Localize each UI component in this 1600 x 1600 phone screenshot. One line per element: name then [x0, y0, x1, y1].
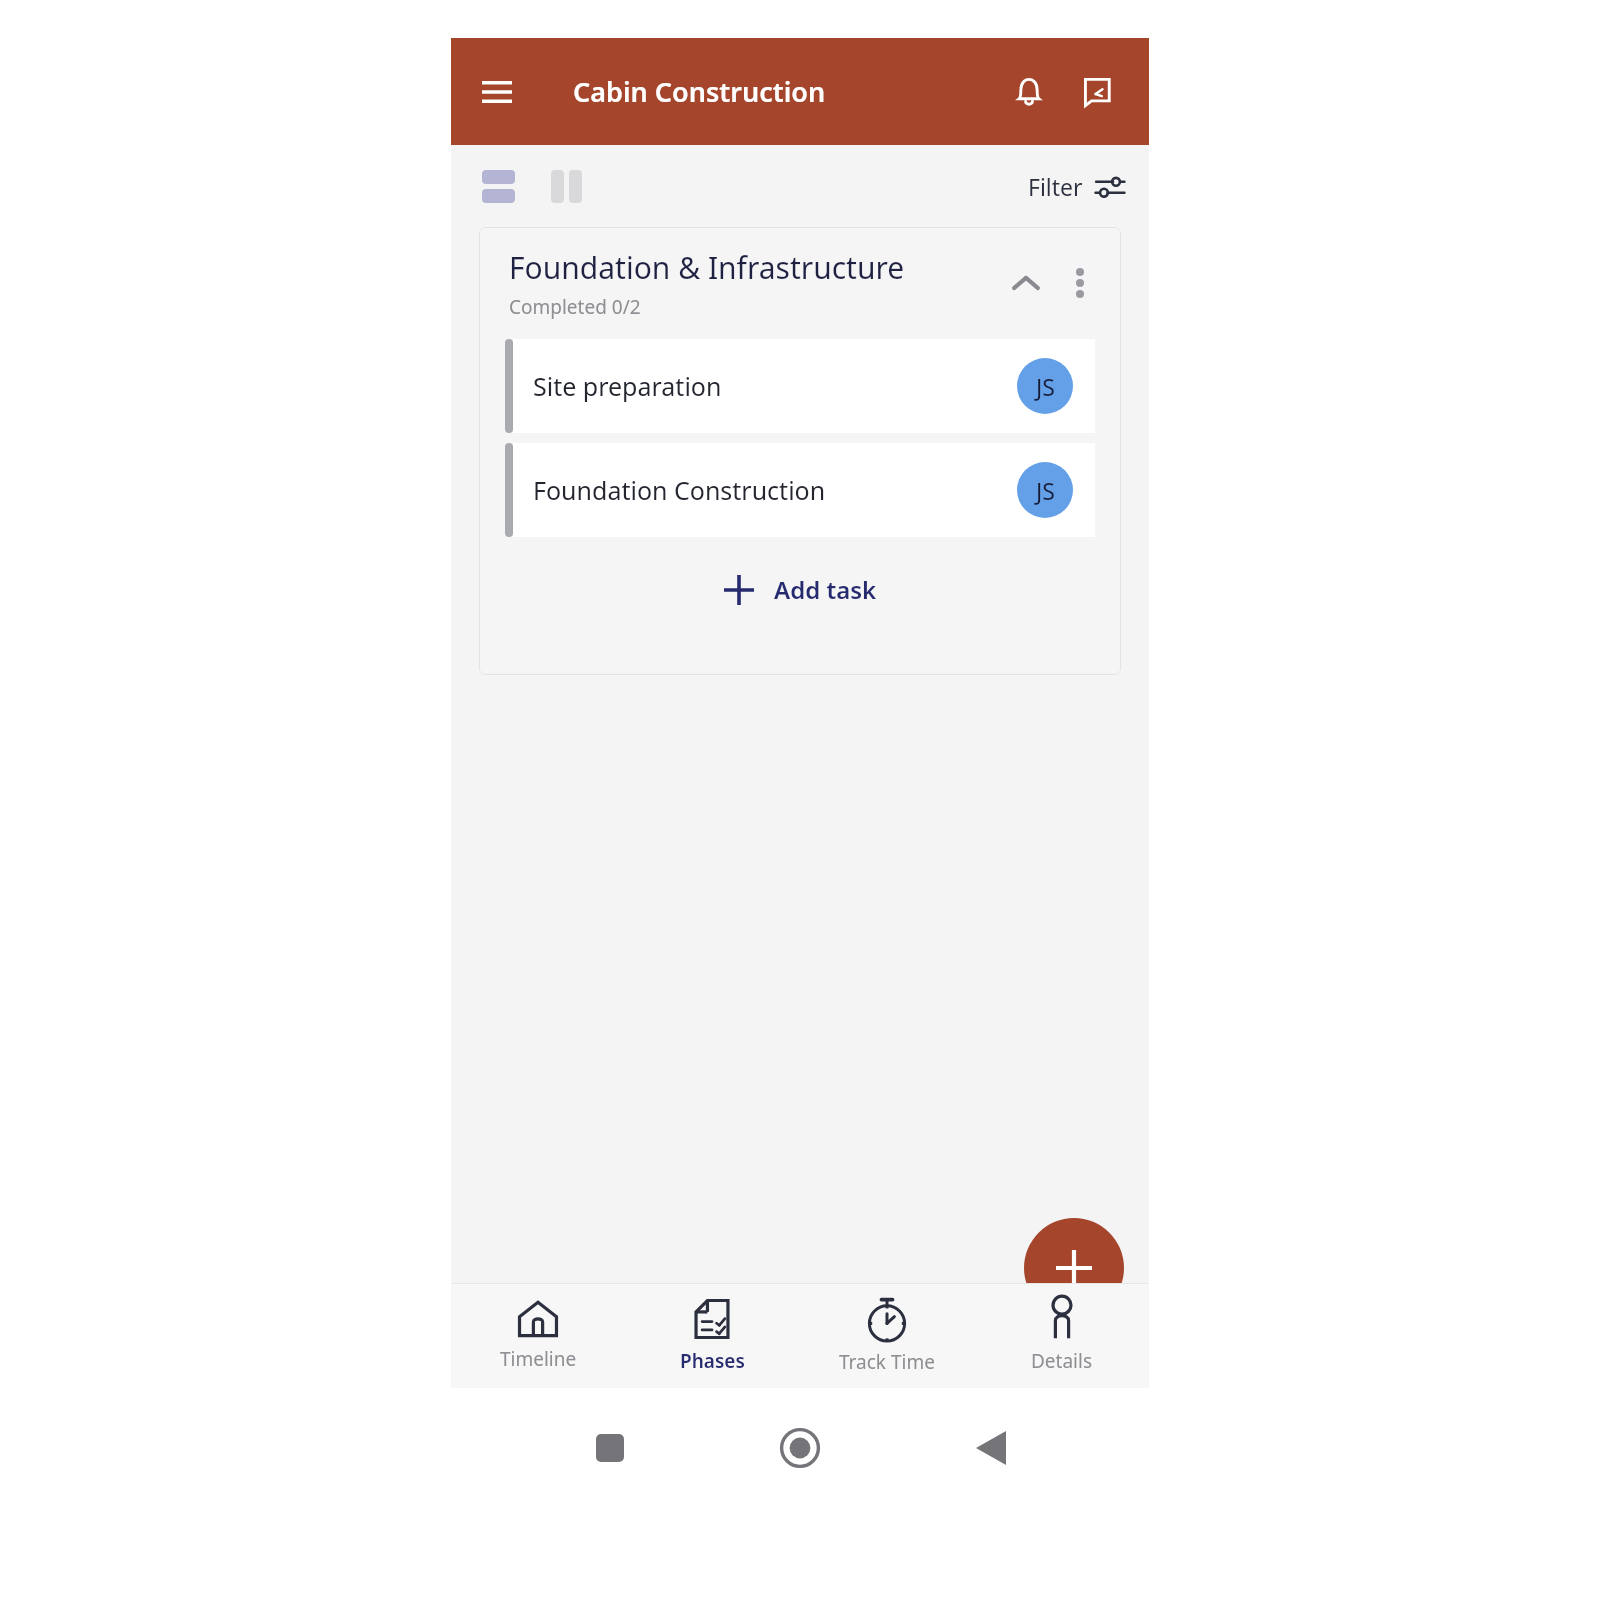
staticText: Foundation & Infrastructure	[509, 247, 905, 288]
button[interactable]: Timeline	[451, 1284, 625, 1388]
staticText: Site preparation	[533, 369, 1017, 403]
button[interactable]: More options	[1053, 256, 1107, 310]
button[interactable]: Notifications	[999, 62, 1059, 122]
button[interactable]: Back	[959, 1416, 1023, 1480]
staticText: JS	[1036, 371, 1055, 402]
button[interactable]: Details	[974, 1284, 1149, 1388]
staticText: Filter	[1028, 171, 1083, 202]
button[interactable]: JS	[1017, 462, 1073, 518]
button[interactable]: Collapse phase	[999, 256, 1053, 310]
button[interactable]: JS	[1017, 358, 1073, 414]
button[interactable]: Home	[768, 1416, 832, 1480]
button[interactable]: Board view	[539, 159, 593, 213]
button[interactable]: Foundation Construction	[505, 443, 1095, 537]
button[interactable]: Recent apps	[578, 1416, 642, 1480]
staticText: Timeline	[500, 1346, 577, 1372]
button[interactable]: Foundation & Infrastructure	[479, 227, 1121, 339]
button[interactable]: Comments	[1067, 62, 1127, 122]
staticText: Add task	[774, 573, 877, 606]
staticText: Phases	[680, 1348, 745, 1374]
button[interactable]: Add	[1024, 1218, 1124, 1318]
button[interactable]: Phases	[625, 1284, 799, 1388]
button[interactable]: Filter	[1022, 165, 1131, 208]
staticText: Completed 0/2	[509, 294, 641, 320]
button[interactable]: Add task	[710, 563, 891, 616]
staticText: Track Time	[839, 1349, 935, 1375]
button[interactable]: Track Time	[799, 1284, 974, 1388]
button[interactable]: Site preparation	[505, 339, 1095, 433]
button[interactable]: Open navigation menu	[469, 64, 525, 120]
staticText: Cabin Construction	[573, 73, 826, 110]
staticText: Foundation Construction	[533, 473, 1017, 507]
staticText: Details	[1031, 1348, 1093, 1374]
staticText: JS	[1036, 475, 1055, 506]
button[interactable]: List view	[471, 159, 525, 213]
